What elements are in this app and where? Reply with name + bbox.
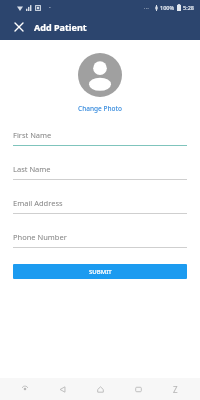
button[interactable]: Email Address <box>13 191 187 225</box>
button[interactable]: Home <box>87 378 113 400</box>
staticText: 100% <box>160 4 175 11</box>
staticText: Change Photo <box>78 104 122 113</box>
button[interactable]: Last Name <box>13 157 187 191</box>
button[interactable]: Change Photo <box>74 103 126 114</box>
staticText: ⋯ <box>144 5 149 11</box>
staticText: Email Address <box>13 198 63 208</box>
staticText: Phone Number <box>13 232 67 242</box>
button[interactable]: Back <box>49 378 75 400</box>
staticText: Z <box>173 384 178 395</box>
staticText: Add Patient <box>34 21 87 33</box>
button[interactable]: Recents <box>125 378 151 400</box>
button[interactable]: SUBMIT <box>13 264 187 279</box>
button[interactable]: Phone Number <box>13 225 187 259</box>
staticText: - <box>49 4 51 11</box>
button[interactable]: Patient photo <box>78 53 122 97</box>
button[interactable]: Screenshot <box>12 378 38 400</box>
staticText: 5:28 <box>183 4 194 11</box>
staticText: Last Name <box>13 164 51 174</box>
staticText: SUBMIT <box>89 268 112 276</box>
button[interactable]: Close <box>8 16 30 38</box>
button[interactable]: Z mode <box>162 378 188 400</box>
button[interactable]: First Name <box>13 123 187 157</box>
staticText: First Name <box>13 130 52 140</box>
